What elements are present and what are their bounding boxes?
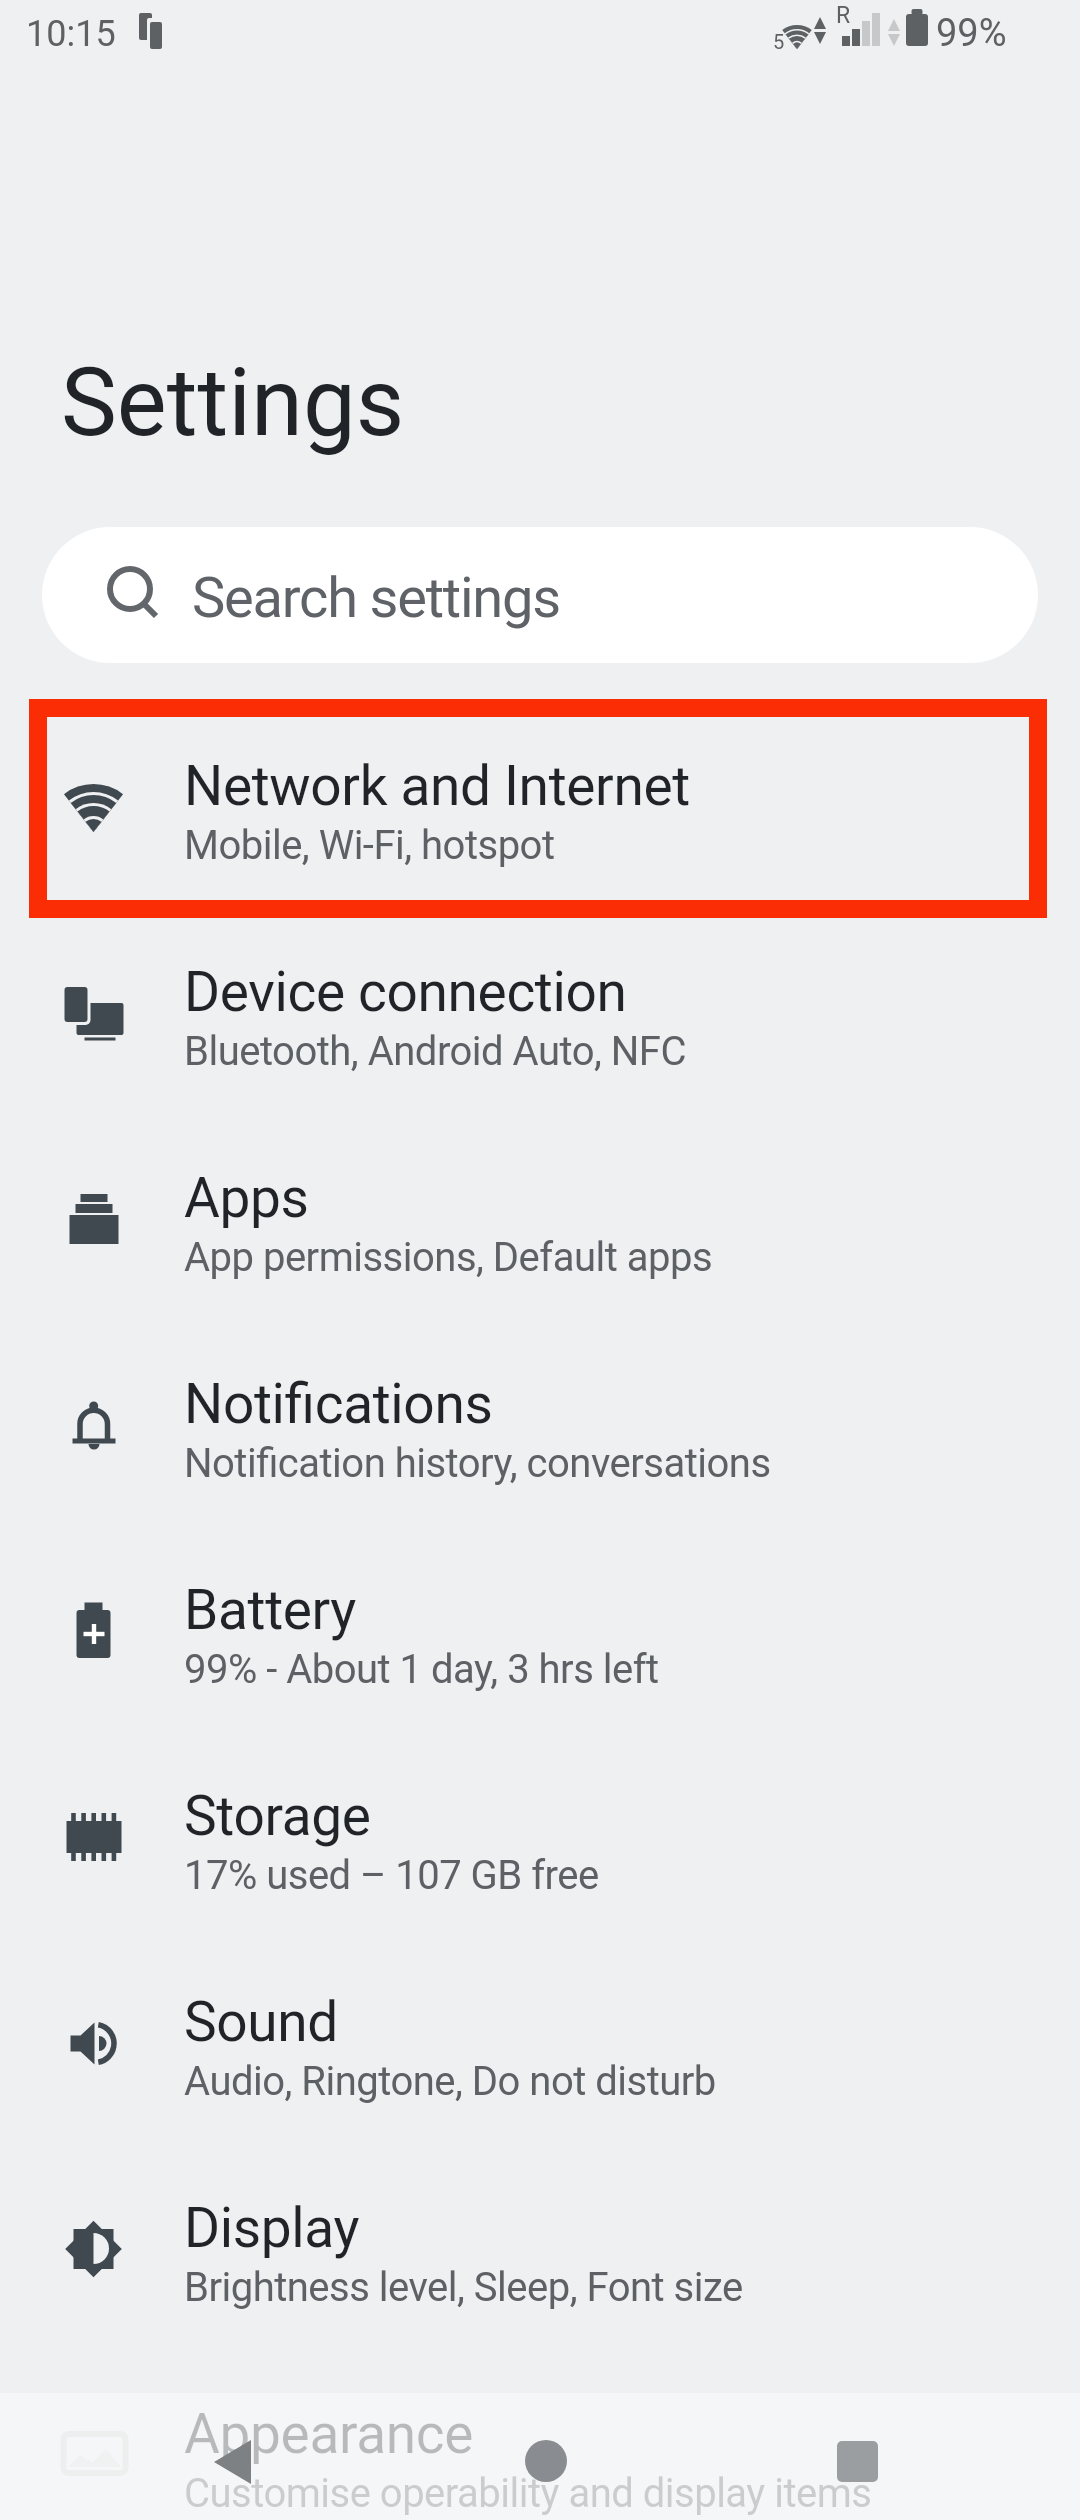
button[interactable]: Sound: [0, 1940, 1080, 2146]
staticText: Apps: [184, 1166, 309, 1230]
button[interactable]: Battery: [0, 1528, 1080, 1734]
staticText: Sound: [184, 1990, 338, 2054]
staticText: 99% - About 1 day, 3 hrs left: [184, 1646, 659, 1693]
button[interactable]: Storage: [0, 1734, 1080, 1940]
staticText: Brightness level, Sleep, Font size: [184, 2264, 743, 2311]
staticText: Battery: [184, 1578, 357, 1642]
staticText: Notifications: [184, 1372, 493, 1436]
staticText: Settings: [61, 348, 405, 458]
staticText: 5: [773, 30, 785, 53]
staticText: Notification history, conversations: [184, 1440, 771, 1487]
button[interactable]: Notifications: [0, 1322, 1080, 1528]
staticText: Storage: [184, 1784, 371, 1848]
button[interactable]: [510, 2433, 582, 2493]
staticText: Display: [184, 2196, 360, 2260]
button[interactable]: [210, 2433, 290, 2493]
button[interactable]: Search settings: [42, 527, 1038, 663]
staticText: Appearance: [184, 2402, 474, 2466]
button[interactable]: Display: [0, 2146, 1080, 2352]
button[interactable]: Device connection: [0, 910, 1080, 1116]
button[interactable]: Appearance: [0, 2352, 1080, 2520]
staticText: Network and Internet: [184, 754, 690, 818]
staticText: Bluetooth, Android Auto, NFC: [184, 1028, 686, 1075]
staticText: R: [836, 2, 851, 29]
button[interactable]: Network and Internet: [0, 704, 1080, 910]
staticText: Audio, Ringtone, Do not disturb: [184, 2058, 716, 2105]
button[interactable]: Apps: [0, 1116, 1080, 1322]
staticText: 17% used – 107 GB free: [184, 1852, 599, 1899]
staticText: 10:15: [26, 13, 116, 55]
staticText: Search settings: [192, 565, 561, 631]
staticText: App permissions, Default apps: [184, 1234, 713, 1281]
staticText: Mobile, Wi-Fi, hotspot: [184, 822, 555, 869]
button[interactable]: [820, 2433, 892, 2493]
staticText: 99%: [936, 11, 1007, 56]
staticText: Device connection: [184, 960, 627, 1024]
staticText: Customise operability and display items: [184, 2470, 872, 2517]
